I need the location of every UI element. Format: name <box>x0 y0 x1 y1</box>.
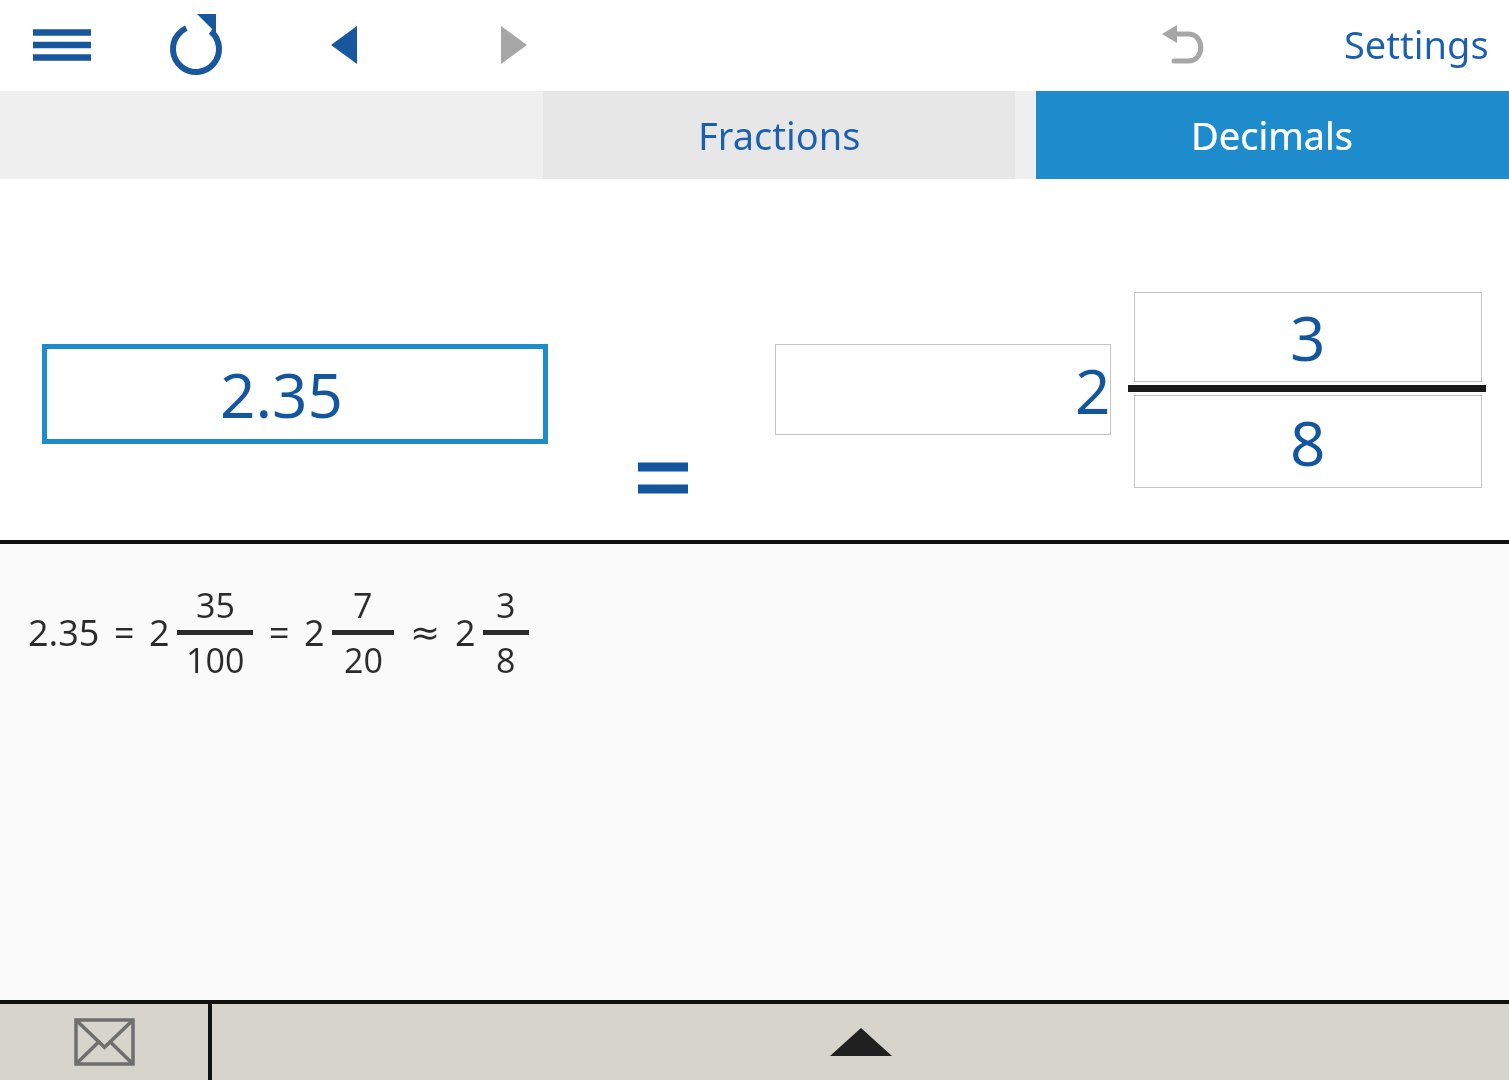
button[interactable]: Fractions <box>543 91 1015 179</box>
staticText: 2 <box>304 608 325 657</box>
staticText: Fractions <box>698 109 861 161</box>
staticText: 100 <box>186 637 245 683</box>
staticText: Decimals <box>1191 109 1354 161</box>
staticText: 7 <box>353 582 373 628</box>
button[interactable]: Undo <box>1146 10 1218 78</box>
staticText: 2 <box>149 608 170 657</box>
staticText: 2 <box>1075 348 1111 432</box>
button[interactable]: Email <box>0 1004 208 1080</box>
button[interactable]: 3 <box>1134 292 1482 382</box>
staticText: 35 <box>196 582 235 628</box>
button[interactable]: Expand <box>212 1004 1509 1080</box>
staticText: ≈ <box>410 612 441 654</box>
staticText: 2.35 <box>220 352 344 436</box>
button[interactable]: Reset <box>162 10 230 80</box>
staticText: 8 <box>1290 400 1326 484</box>
staticText: = <box>114 608 135 657</box>
staticText: Settings <box>1344 18 1489 70</box>
button[interactable]: Decimals <box>1036 91 1509 179</box>
button[interactable]: 2 <box>775 344 1111 435</box>
button[interactable]: Menu <box>26 16 98 74</box>
staticText: 2 <box>455 608 476 657</box>
staticText: = <box>269 608 290 657</box>
staticText: 8 <box>496 637 516 683</box>
button[interactable]: 8 <box>1134 395 1482 488</box>
staticText: 20 <box>344 637 383 683</box>
staticText: 3 <box>496 582 516 628</box>
button[interactable]: Settings <box>1328 8 1504 80</box>
button[interactable]: Next <box>482 14 546 76</box>
staticText: 3 <box>1290 295 1326 379</box>
button[interactable]: 2.35 <box>42 344 548 444</box>
staticText: 2.35 <box>28 608 100 657</box>
button[interactable]: Previous <box>312 14 376 76</box>
